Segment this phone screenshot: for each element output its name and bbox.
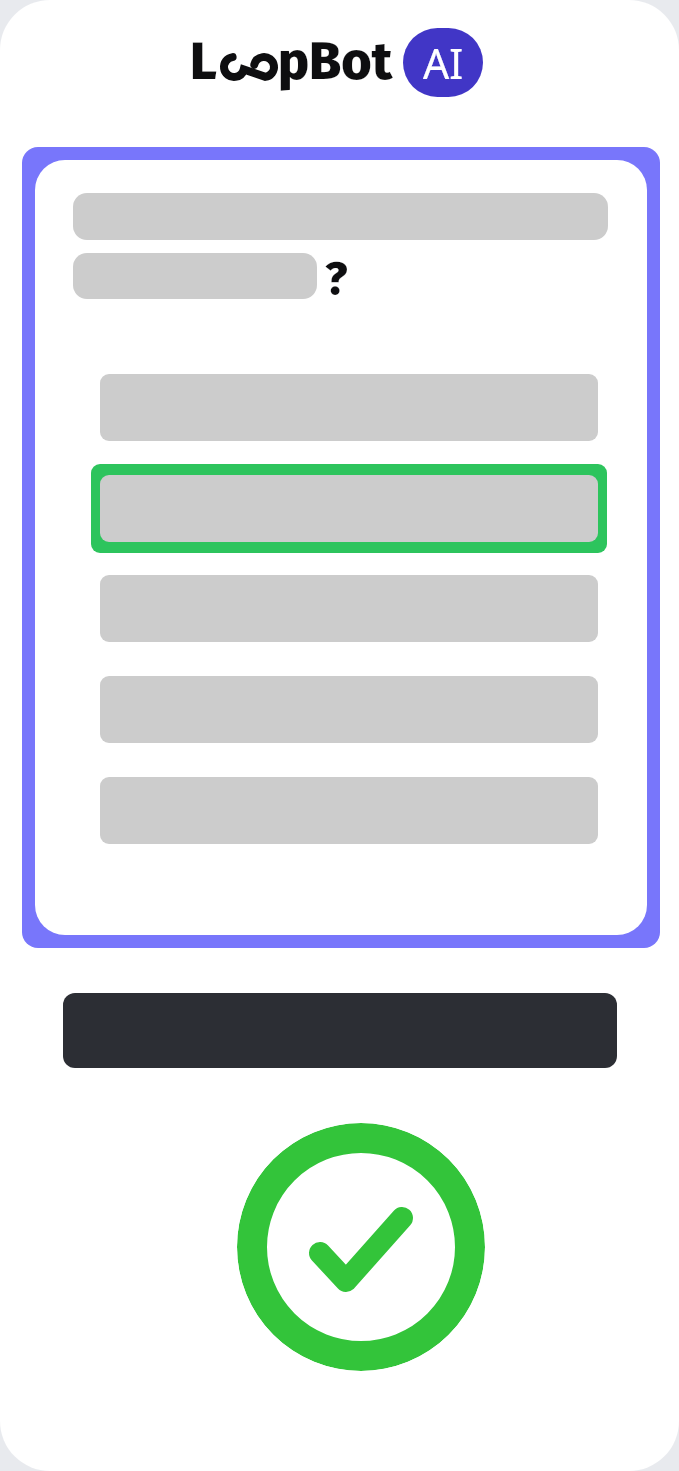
staticText: L: [190, 30, 217, 92]
button[interactable]: [91, 464, 607, 553]
staticText: AI: [423, 35, 464, 91]
button[interactable]: Correct answer: [237, 1123, 485, 1371]
staticText: ?: [325, 251, 348, 306]
staticText: pBot: [278, 30, 393, 92]
button[interactable]: Submit answer: [63, 993, 617, 1068]
button[interactable]: LoopBot AI: [190, 28, 490, 102]
